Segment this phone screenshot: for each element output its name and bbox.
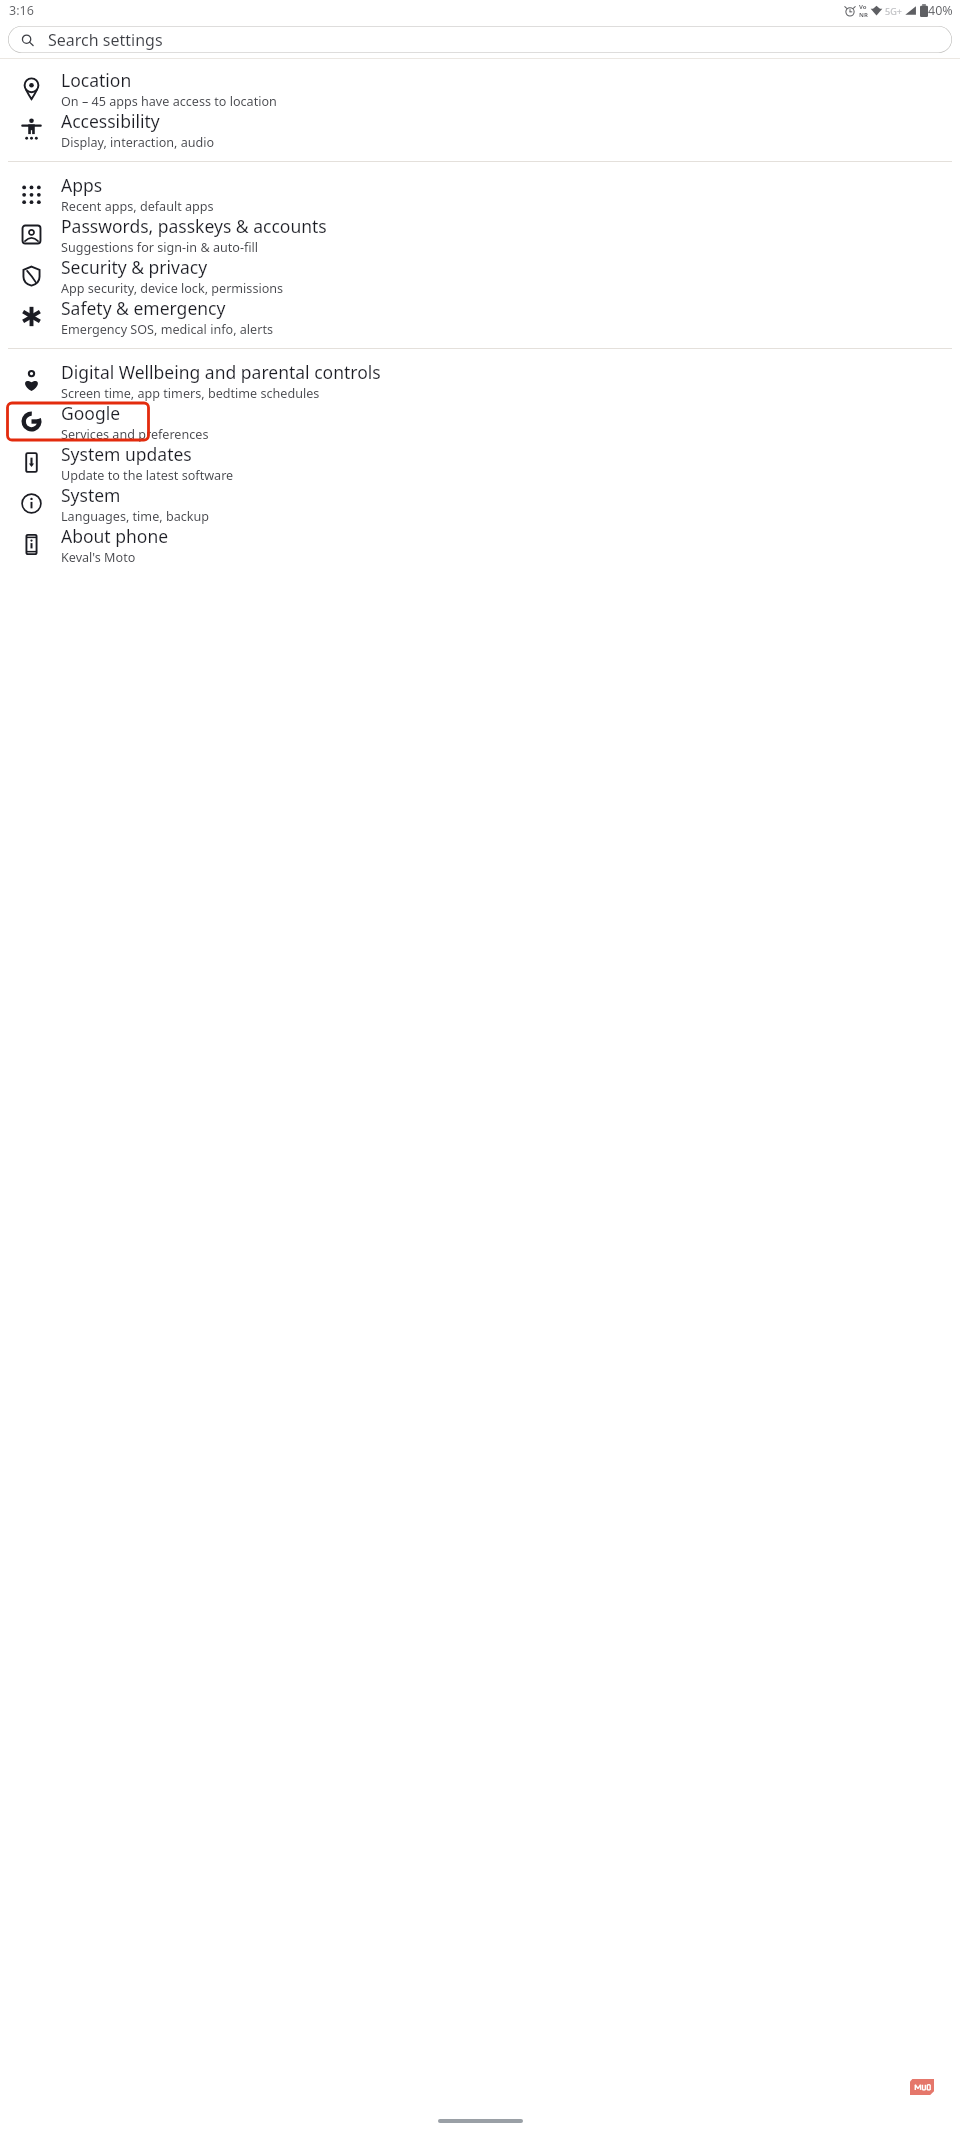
button[interactable]: Google bbox=[0, 401, 960, 442]
button[interactable]: About phone bbox=[0, 524, 960, 565]
button[interactable]: Security & privacy bbox=[0, 255, 960, 296]
staticText: Languages, time, backup bbox=[61, 508, 210, 524]
other: Search bbox=[21, 34, 34, 47]
button[interactable]: System updates bbox=[0, 442, 960, 483]
button[interactable]: Search bbox=[8, 26, 952, 53]
staticText: Security & privacy bbox=[61, 255, 208, 279]
staticText: Emergency SOS, medical info, alerts bbox=[61, 321, 273, 337]
staticText: 5G+ bbox=[885, 5, 902, 17]
button[interactable]: Accessibility bbox=[0, 109, 960, 150]
button[interactable]: Apps bbox=[0, 173, 960, 214]
staticText: Google bbox=[61, 401, 121, 425]
button[interactable]: Passwords, passkeys & accounts bbox=[0, 214, 960, 255]
staticText: NR bbox=[859, 11, 868, 19]
staticText: Location bbox=[61, 68, 132, 92]
staticText: Screen time, app timers, bedtime schedul… bbox=[61, 385, 320, 401]
button[interactable]: System bbox=[0, 483, 960, 524]
staticText: About phone bbox=[61, 524, 169, 548]
staticText: System updates bbox=[61, 442, 192, 466]
staticText: Update to the latest software bbox=[61, 467, 234, 483]
staticText: Safety & emergency bbox=[61, 296, 226, 320]
staticText: Vo bbox=[859, 3, 867, 11]
button[interactable]: Digital Wellbeing and parental controls bbox=[0, 360, 960, 401]
button[interactable]: Location bbox=[0, 68, 960, 109]
staticText: Passwords, passkeys & accounts bbox=[61, 214, 327, 238]
staticText: Digital Wellbeing and parental controls bbox=[61, 360, 381, 384]
staticText: 3:16 bbox=[9, 2, 34, 19]
staticText: Recent apps, default apps bbox=[61, 198, 214, 214]
staticText: App security, device lock, permissions bbox=[61, 280, 284, 296]
staticText: Search settings bbox=[48, 29, 163, 51]
staticText: Services and preferences bbox=[61, 426, 209, 442]
button[interactable]: Safety & emergency bbox=[0, 296, 960, 337]
staticText: Display, interaction, audio bbox=[61, 134, 215, 150]
staticText: Apps bbox=[61, 173, 103, 197]
staticText: Keval's Moto bbox=[61, 549, 136, 565]
staticText: Suggestions for sign-in & auto-fill bbox=[61, 239, 259, 255]
staticText: 40% bbox=[928, 2, 953, 19]
staticText: System bbox=[61, 483, 121, 507]
staticText: Accessibility bbox=[61, 109, 160, 133]
staticText: On – 45 apps have access to location bbox=[61, 93, 277, 109]
